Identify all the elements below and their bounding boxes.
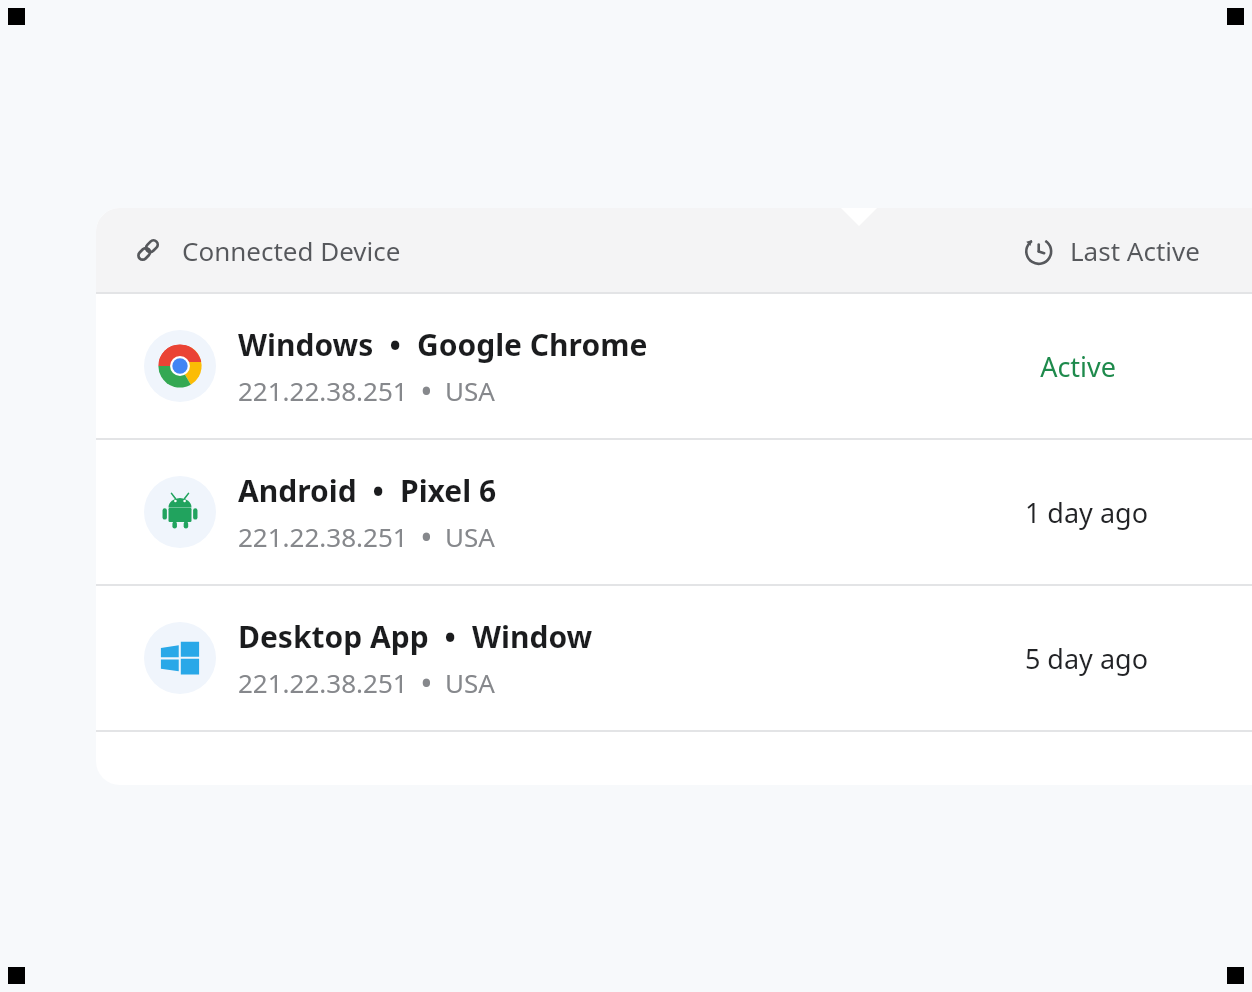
staticText: •: [357, 470, 400, 511]
staticText: •: [408, 373, 445, 408]
staticText: Android: [238, 470, 357, 511]
staticText: Window: [472, 616, 593, 657]
staticText: •: [408, 665, 445, 700]
button[interactable]: Windows: [96, 294, 1252, 438]
staticText: Connected Device: [182, 233, 401, 268]
staticText: Pixel 6: [400, 470, 497, 511]
staticText: Google Chrome: [417, 324, 648, 365]
staticText: •: [408, 519, 445, 554]
button[interactable]: Android: [96, 440, 1252, 584]
staticText: Active: [1040, 348, 1116, 385]
staticText: 5 day ago: [1024, 640, 1148, 677]
button[interactable]: Connected Device: [130, 232, 401, 268]
staticText: USA: [445, 519, 495, 554]
staticText: USA: [445, 665, 495, 700]
button[interactable]: Desktop App: [96, 586, 1252, 730]
staticText: •: [374, 324, 417, 365]
staticText: 221.22.38.251: [238, 665, 408, 700]
staticText: USA: [445, 373, 495, 408]
button[interactable]: Last Active: [1020, 232, 1200, 268]
staticText: 1 day ago: [1024, 494, 1148, 531]
staticText: Last Active: [1070, 233, 1200, 268]
staticText: 221.22.38.251: [238, 373, 408, 408]
staticText: •: [429, 616, 472, 657]
staticText: Desktop App: [238, 616, 429, 657]
staticText: 221.22.38.251: [238, 519, 408, 554]
staticText: Windows: [238, 324, 374, 365]
